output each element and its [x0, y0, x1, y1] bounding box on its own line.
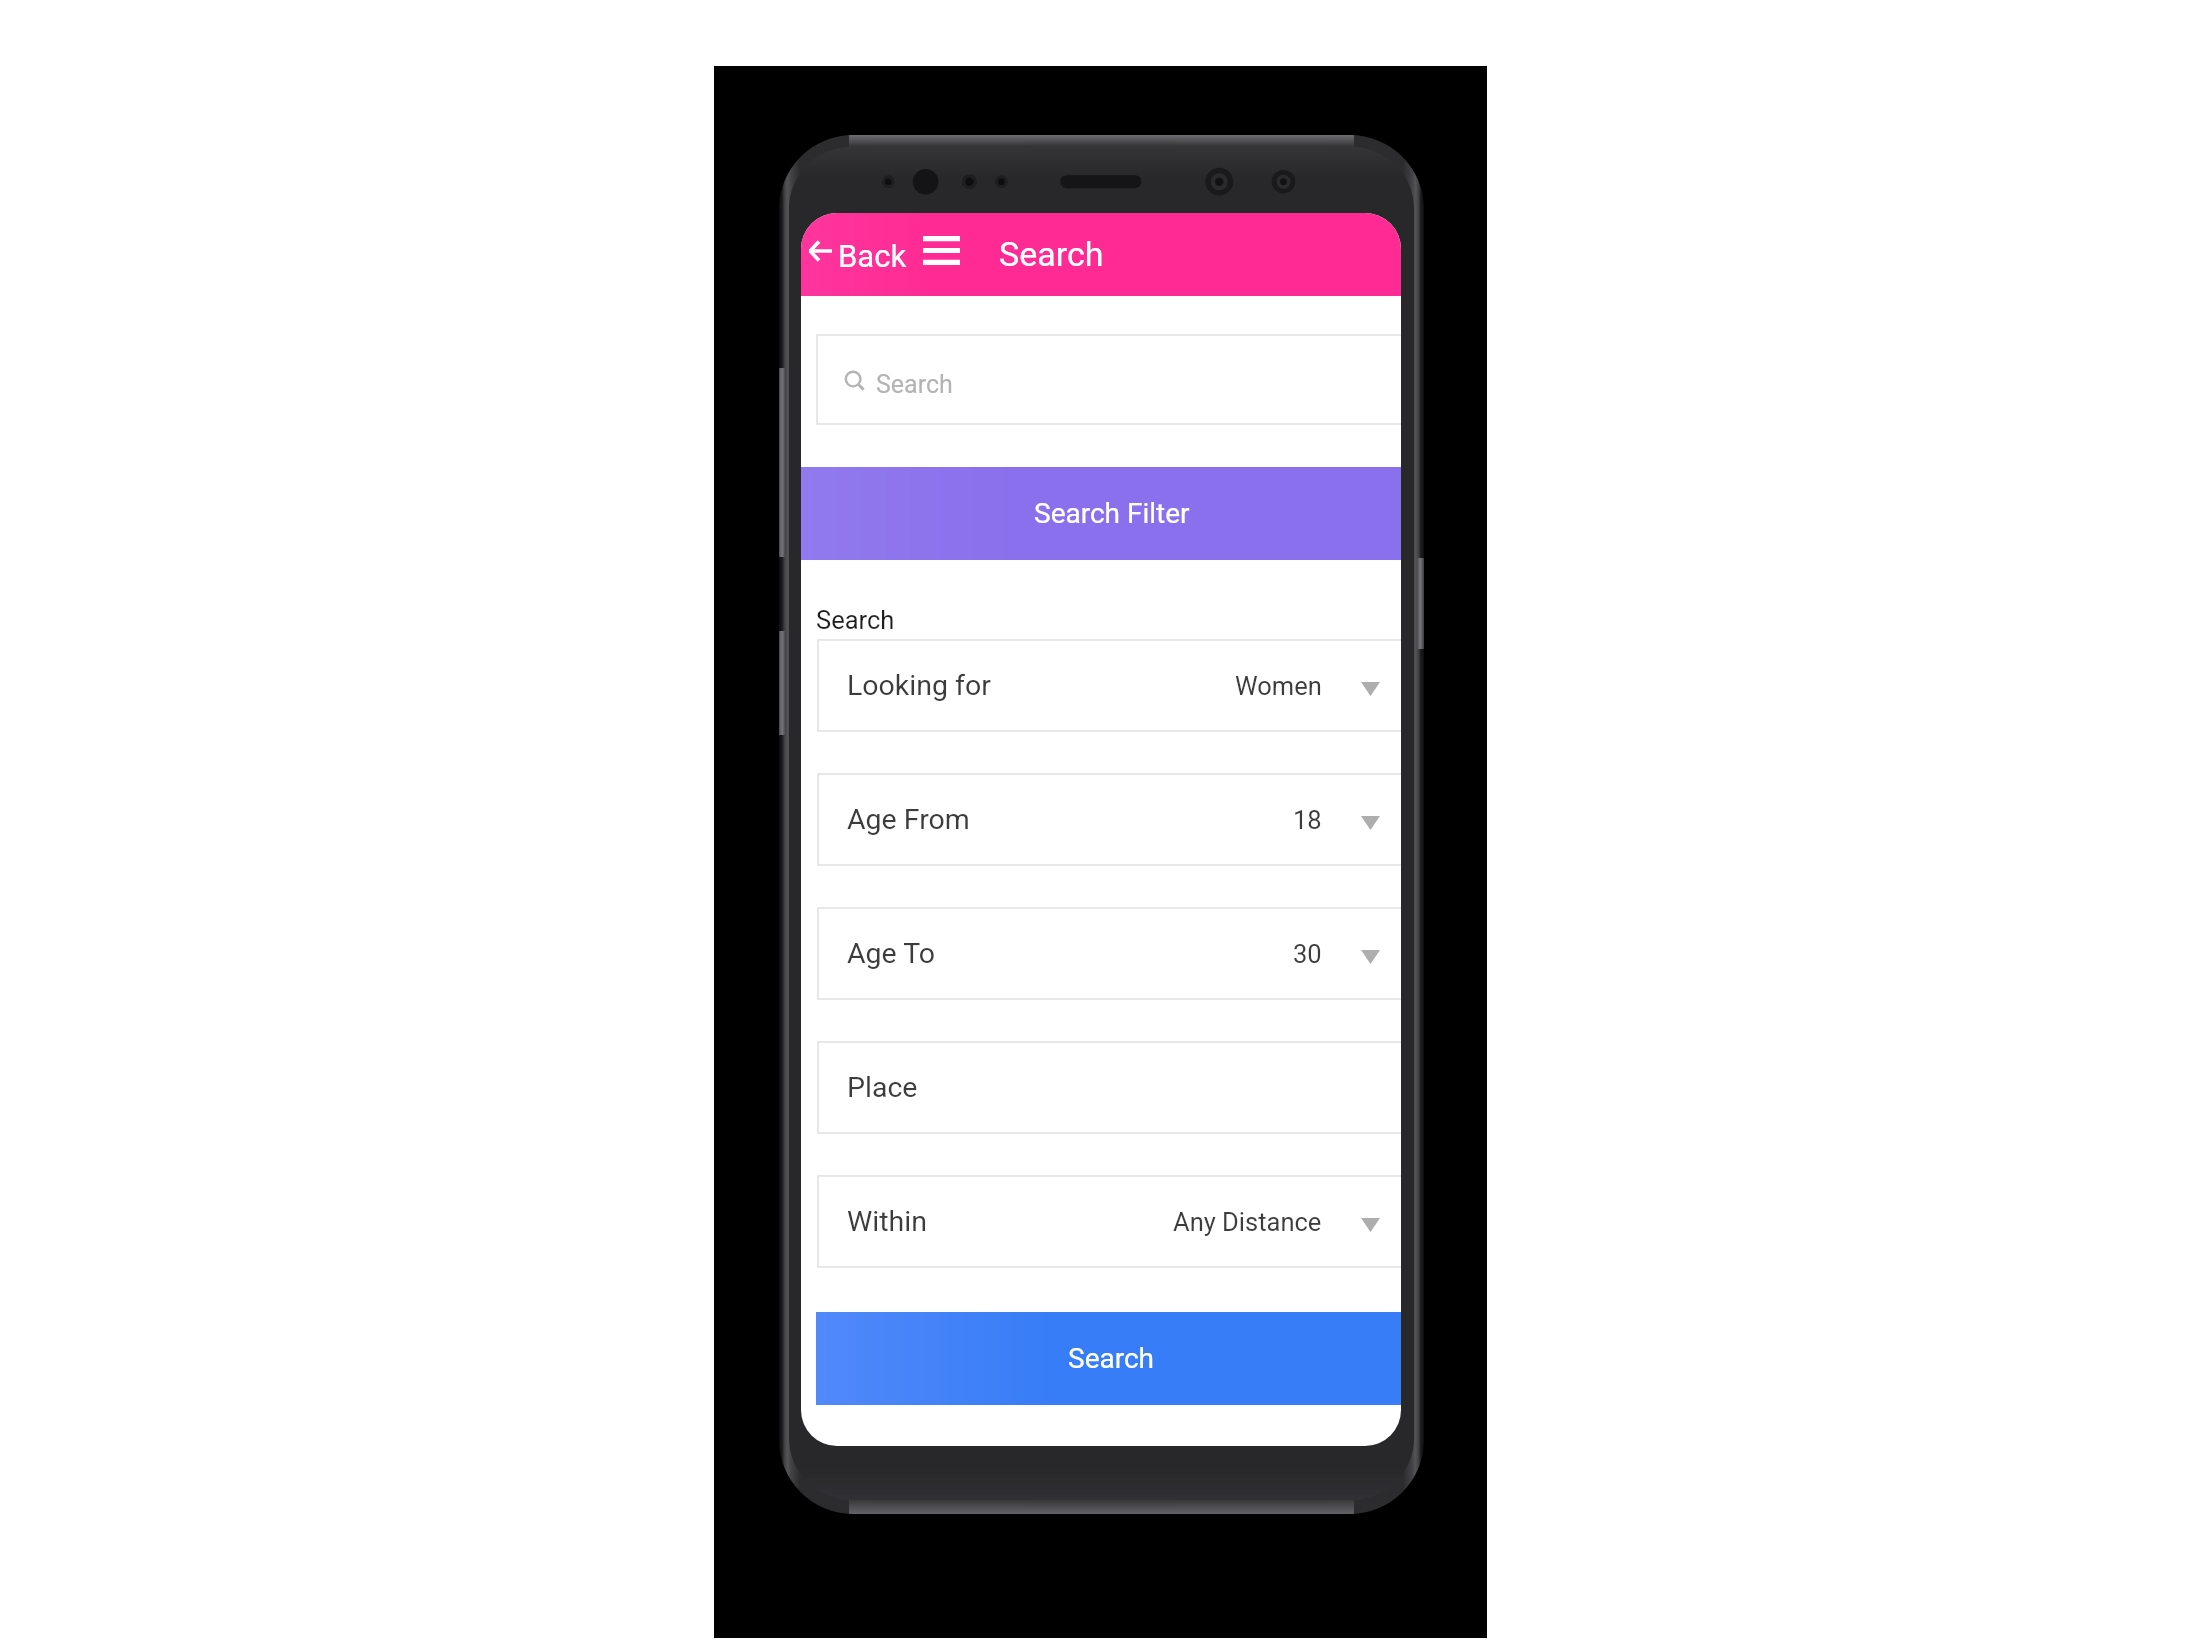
- staticText: Search: [1068, 1342, 1155, 1375]
- staticText: Search Filter: [1034, 497, 1190, 530]
- button[interactable]: Search Filter: [801, 467, 1401, 560]
- button[interactable]: Menu: [915, 213, 968, 296]
- staticText: Within: [847, 1205, 927, 1238]
- button[interactable]: Back: [806, 213, 907, 296]
- button[interactable]: Within: [818, 1176, 1401, 1267]
- button[interactable]: Search: [816, 1312, 1401, 1405]
- button[interactable]: Search: [817, 335, 1401, 424]
- staticText: Age From: [847, 803, 970, 836]
- staticText: Search: [816, 605, 895, 635]
- staticText: 30: [1293, 939, 1322, 969]
- button[interactable]: Place: [818, 1042, 1401, 1133]
- staticText: Women: [1235, 671, 1322, 701]
- staticText: Place: [847, 1071, 918, 1104]
- staticText: Search: [999, 234, 1104, 274]
- staticText: Any Distance: [1173, 1207, 1322, 1237]
- staticText: Search: [876, 370, 953, 399]
- button[interactable]: Age From: [818, 774, 1401, 865]
- button[interactable]: Age To: [818, 908, 1401, 999]
- staticText: Age To: [847, 937, 936, 970]
- button[interactable]: Looking for: [818, 640, 1401, 731]
- staticText: 18: [1293, 805, 1322, 835]
- staticText: Back: [838, 238, 907, 274]
- staticText: Looking for: [847, 669, 991, 702]
